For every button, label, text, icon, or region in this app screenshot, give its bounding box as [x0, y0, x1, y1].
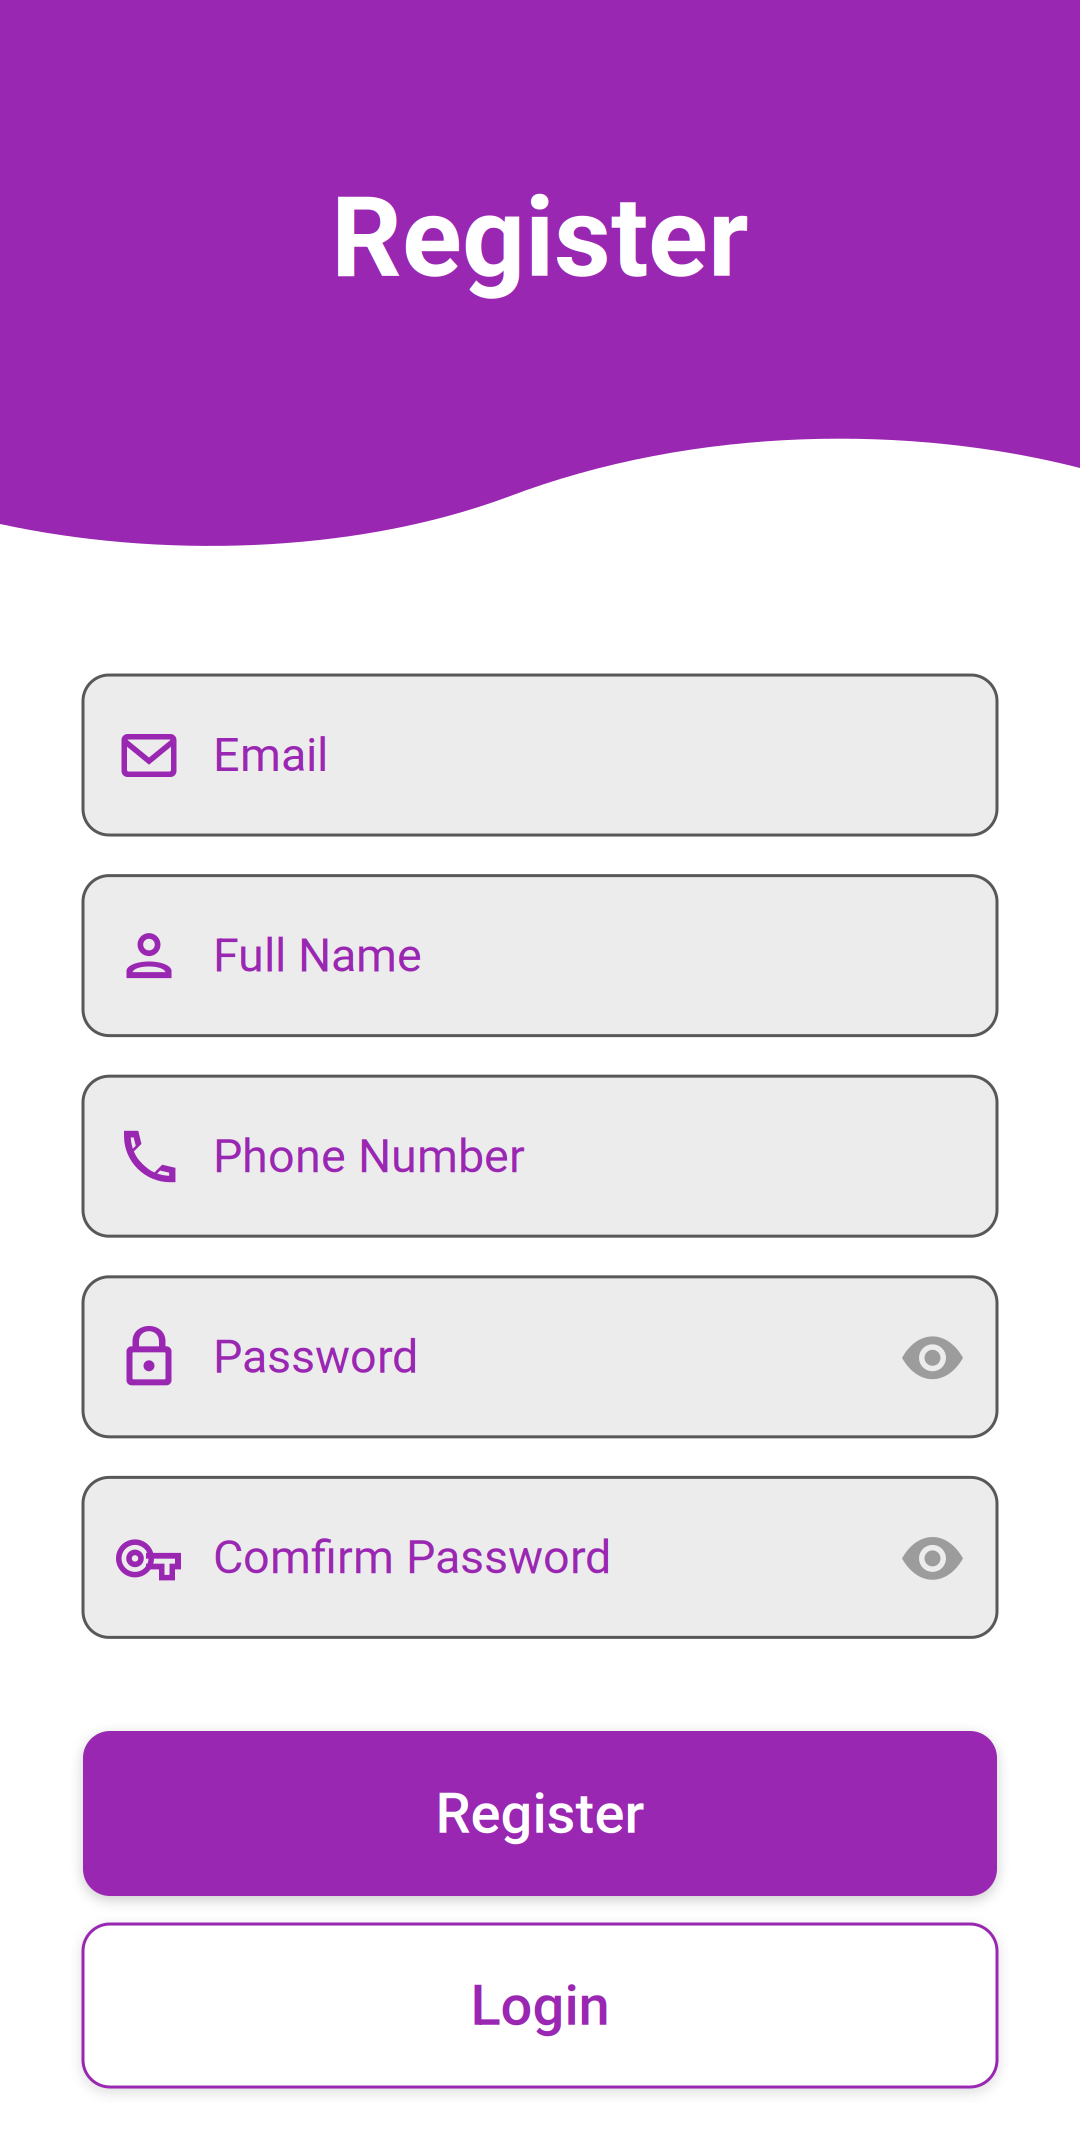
- button[interactable]: Show password: [885, 1507, 980, 1607]
- button[interactable]: Full Name: [83, 876, 997, 1036]
- button[interactable]: Register: [83, 1731, 997, 1896]
- staticText: Email: [213, 728, 328, 782]
- button[interactable]: Comfirm Password: [83, 1477, 997, 1637]
- staticText: Login: [470, 1973, 609, 2038]
- button[interactable]: Email: [83, 675, 997, 835]
- staticText: Full Name: [213, 928, 422, 983]
- staticText: Comfirm Password: [213, 1530, 611, 1585]
- button[interactable]: Login: [83, 1924, 997, 2087]
- button[interactable]: Show password: [885, 1307, 980, 1407]
- staticText: Password: [213, 1329, 418, 1384]
- staticText: Register: [435, 1781, 644, 1846]
- button[interactable]: Phone Number: [83, 1076, 997, 1236]
- staticText: Phone Number: [213, 1129, 525, 1184]
- button[interactable]: Password: [83, 1277, 997, 1437]
- staticText: Register: [331, 173, 749, 303]
